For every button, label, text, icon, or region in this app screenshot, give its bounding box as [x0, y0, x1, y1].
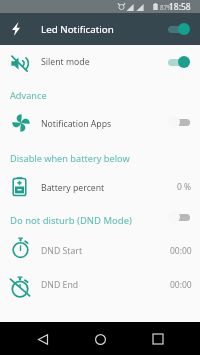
button[interactable]: Silent mode [0, 45, 200, 79]
button[interactable]: Silent mode toggle [168, 56, 190, 68]
staticText: Do not disturb (DND Mode) [10, 214, 132, 227]
staticText: 0 % [177, 181, 192, 193]
button[interactable]: Home [85, 324, 115, 354]
staticText: Advance [10, 89, 47, 102]
button[interactable]: DND End [0, 270, 200, 306]
staticText: Battery percent [41, 182, 105, 194]
staticText: DND End [41, 279, 79, 291]
button[interactable]: Notification Apps [0, 105, 200, 141]
staticText: 87% [160, 3, 173, 11]
staticText: Silent mode [41, 56, 90, 68]
staticText: 00:00 [170, 279, 192, 291]
staticText: Led Notification [41, 23, 114, 36]
staticText: 00:00 [170, 245, 192, 257]
button[interactable]: Battery percent [0, 170, 200, 204]
staticText: Notification Apps [41, 118, 112, 130]
staticText: Disable when battery below [10, 152, 130, 165]
button[interactable]: Back [28, 324, 58, 354]
staticText: 18:58 [169, 1, 191, 13]
button[interactable]: Recent apps [143, 324, 173, 354]
button[interactable]: DND Start [0, 232, 200, 268]
button[interactable]: Toggle [168, 116, 190, 128]
button[interactable]: Toggle [168, 211, 190, 223]
button[interactable]: Enable LED notification [168, 23, 190, 35]
staticText: DND Start [41, 245, 83, 257]
